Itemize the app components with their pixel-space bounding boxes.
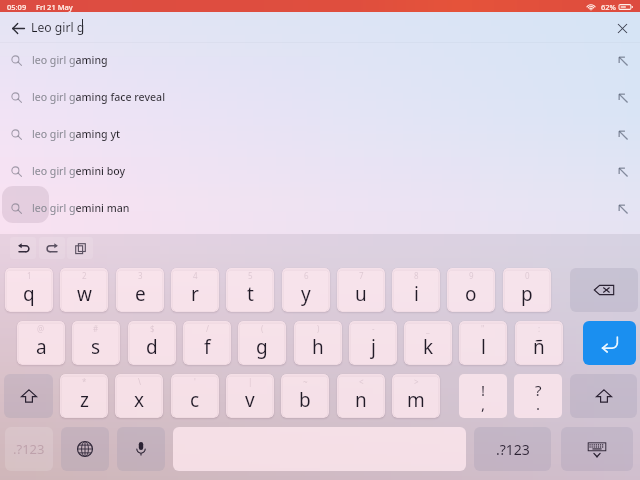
staticText: ? bbox=[535, 380, 542, 400]
button[interactable]: 1 bbox=[5, 268, 53, 312]
button[interactable]: 5 bbox=[226, 268, 274, 312]
button[interactable]: .?123 bbox=[5, 427, 53, 471]
staticText: a bbox=[36, 334, 47, 360]
button[interactable]: 2 bbox=[60, 268, 108, 312]
staticText: u bbox=[355, 281, 367, 307]
staticText: 9 bbox=[469, 270, 474, 281]
button[interactable]: * bbox=[60, 374, 108, 418]
button[interactable]: leo girl gemini boy bbox=[0, 152, 640, 189]
staticText: * bbox=[82, 376, 87, 387]
staticText: leo girl gaming bbox=[32, 53, 108, 67]
button[interactable]: 6 bbox=[282, 268, 330, 312]
button[interactable]: Shift bbox=[570, 374, 637, 418]
staticText: leo girl gemini man bbox=[32, 201, 130, 215]
staticText: n bbox=[355, 387, 367, 413]
button[interactable]: ! bbox=[459, 374, 507, 418]
button[interactable]: # bbox=[72, 321, 120, 365]
staticText: .?123 bbox=[13, 440, 45, 458]
staticText: z bbox=[80, 387, 89, 413]
button[interactable]: 0 bbox=[503, 268, 551, 312]
button[interactable]: ? bbox=[514, 374, 562, 418]
staticText: Leo girl g bbox=[31, 19, 85, 36]
staticText: 8 bbox=[414, 270, 419, 281]
button[interactable]: Backspace bbox=[570, 268, 638, 312]
button[interactable]: ( bbox=[238, 321, 286, 365]
staticText: 0 bbox=[525, 270, 530, 281]
staticText: k bbox=[423, 334, 434, 360]
button[interactable]: ) bbox=[294, 321, 342, 365]
button[interactable]: @ bbox=[17, 321, 65, 365]
staticText: 1 bbox=[27, 270, 32, 281]
staticText: s bbox=[91, 334, 101, 360]
staticText: 7 bbox=[359, 270, 364, 281]
staticText: , bbox=[481, 394, 486, 414]
button[interactable]: 9 bbox=[447, 268, 495, 312]
staticText: w bbox=[77, 281, 92, 307]
staticText: leo girl gaming yt bbox=[32, 127, 121, 141]
button[interactable]: Shift bbox=[4, 374, 53, 418]
button[interactable]: | bbox=[226, 374, 274, 418]
staticText: .?123 bbox=[496, 440, 530, 459]
staticText: $ bbox=[150, 323, 155, 334]
staticText: ' bbox=[194, 376, 196, 387]
staticText: / bbox=[206, 323, 209, 334]
staticText: - bbox=[372, 323, 375, 334]
button[interactable]: Redo bbox=[39, 237, 65, 259]
staticText: j bbox=[371, 334, 376, 360]
staticText: # bbox=[93, 323, 99, 334]
button[interactable]: Change language bbox=[61, 427, 109, 471]
staticText: . bbox=[536, 394, 541, 414]
button[interactable]: leo girl gaming yt bbox=[0, 115, 640, 152]
staticText: v bbox=[245, 387, 255, 413]
staticText: > bbox=[414, 376, 419, 387]
button[interactable]: leo girl gaming bbox=[0, 41, 640, 78]
staticText: 05:09 bbox=[7, 2, 27, 12]
staticText: Fri 21 May bbox=[36, 2, 73, 12]
button[interactable]: Hide keyboard bbox=[561, 427, 633, 471]
button[interactable]: / bbox=[183, 321, 231, 365]
button[interactable]: $ bbox=[128, 321, 176, 365]
staticText: 4 bbox=[193, 270, 198, 281]
button[interactable]: : bbox=[515, 321, 563, 365]
staticText: leo girl gaming face reveal bbox=[32, 90, 166, 104]
button[interactable]: Undo bbox=[10, 237, 36, 259]
staticText: c bbox=[190, 387, 200, 413]
button[interactable]: Clipboard bbox=[67, 237, 93, 259]
staticText: r bbox=[191, 281, 199, 307]
button[interactable]: Enter bbox=[583, 321, 636, 365]
button[interactable]: \ bbox=[115, 374, 163, 418]
staticText: ! bbox=[481, 380, 486, 400]
staticText: 62% bbox=[601, 2, 616, 12]
button[interactable]: Voice input bbox=[117, 427, 165, 471]
button[interactable]: leo girl gaming face reveal bbox=[0, 78, 640, 115]
button[interactable]: _ bbox=[404, 321, 452, 365]
staticText: q bbox=[23, 281, 35, 307]
staticText: o bbox=[465, 281, 477, 307]
button[interactable]: ~ bbox=[281, 374, 329, 418]
button[interactable]: > bbox=[392, 374, 440, 418]
staticText: 2 bbox=[82, 270, 87, 281]
button[interactable]: " bbox=[459, 321, 507, 365]
staticText: : bbox=[538, 323, 541, 334]
staticText: h bbox=[312, 334, 324, 360]
staticText: ñ bbox=[533, 334, 545, 360]
button[interactable]: 3 bbox=[116, 268, 164, 312]
button[interactable]: Back bbox=[6, 15, 31, 40]
button[interactable]: < bbox=[337, 374, 385, 418]
button[interactable]: .?123 bbox=[474, 427, 551, 471]
button[interactable]: Clear query bbox=[610, 15, 635, 40]
button[interactable]: 4 bbox=[171, 268, 219, 312]
button[interactable]: 7 bbox=[337, 268, 385, 312]
staticText: m bbox=[407, 387, 425, 413]
staticText: y bbox=[301, 281, 311, 307]
staticText: t bbox=[247, 281, 254, 307]
staticText: x bbox=[134, 387, 145, 413]
staticText: d bbox=[146, 334, 158, 360]
button[interactable]: 8 bbox=[392, 268, 440, 312]
button[interactable]: ' bbox=[171, 374, 219, 418]
staticText: 3 bbox=[138, 270, 143, 281]
staticText: p bbox=[521, 281, 533, 307]
button[interactable]: - bbox=[349, 321, 397, 365]
button[interactable]: leo girl gemini man bbox=[0, 189, 640, 226]
